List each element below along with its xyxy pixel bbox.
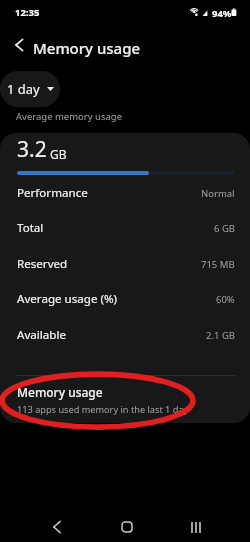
staticText: Average usage (%) (17, 291, 118, 307)
button[interactable]: Available (0, 317, 250, 353)
staticText: 2.1 GB (206, 329, 235, 342)
staticText: Performance (17, 185, 88, 201)
staticText: 3.2 (17, 135, 47, 164)
staticText: Average memory usage (16, 110, 123, 123)
staticText: 12:35 (15, 6, 40, 19)
staticText: Reserved (17, 256, 68, 272)
staticText: 94% (212, 7, 232, 20)
staticText: Available (17, 327, 66, 343)
button[interactable]: Total (0, 210, 250, 246)
button[interactable]: Reserved (0, 246, 250, 282)
staticText: Memory usage (17, 384, 103, 400)
staticText: 715 MB (201, 258, 235, 271)
button[interactable]: Navigate up (8, 34, 30, 56)
button[interactable]: Recent apps (181, 512, 211, 542)
staticText: 113 apps used memory in the last 1 day (17, 403, 189, 416)
button[interactable]: Memory usage (0, 376, 250, 423)
button[interactable]: Back (42, 512, 72, 542)
staticText: GB (50, 146, 67, 162)
staticText: 6 GB (214, 222, 235, 235)
staticText: Normal (201, 187, 235, 200)
staticText: Total (17, 220, 44, 236)
button[interactable]: 1 day (0, 71, 60, 107)
button[interactable]: Home (112, 512, 142, 542)
staticText: Memory usage (33, 38, 141, 58)
staticText: 60% (216, 293, 235, 306)
staticText: 1 day (7, 80, 40, 98)
button[interactable]: Performance (0, 175, 250, 211)
button[interactable]: Average usage (%) (0, 281, 250, 317)
